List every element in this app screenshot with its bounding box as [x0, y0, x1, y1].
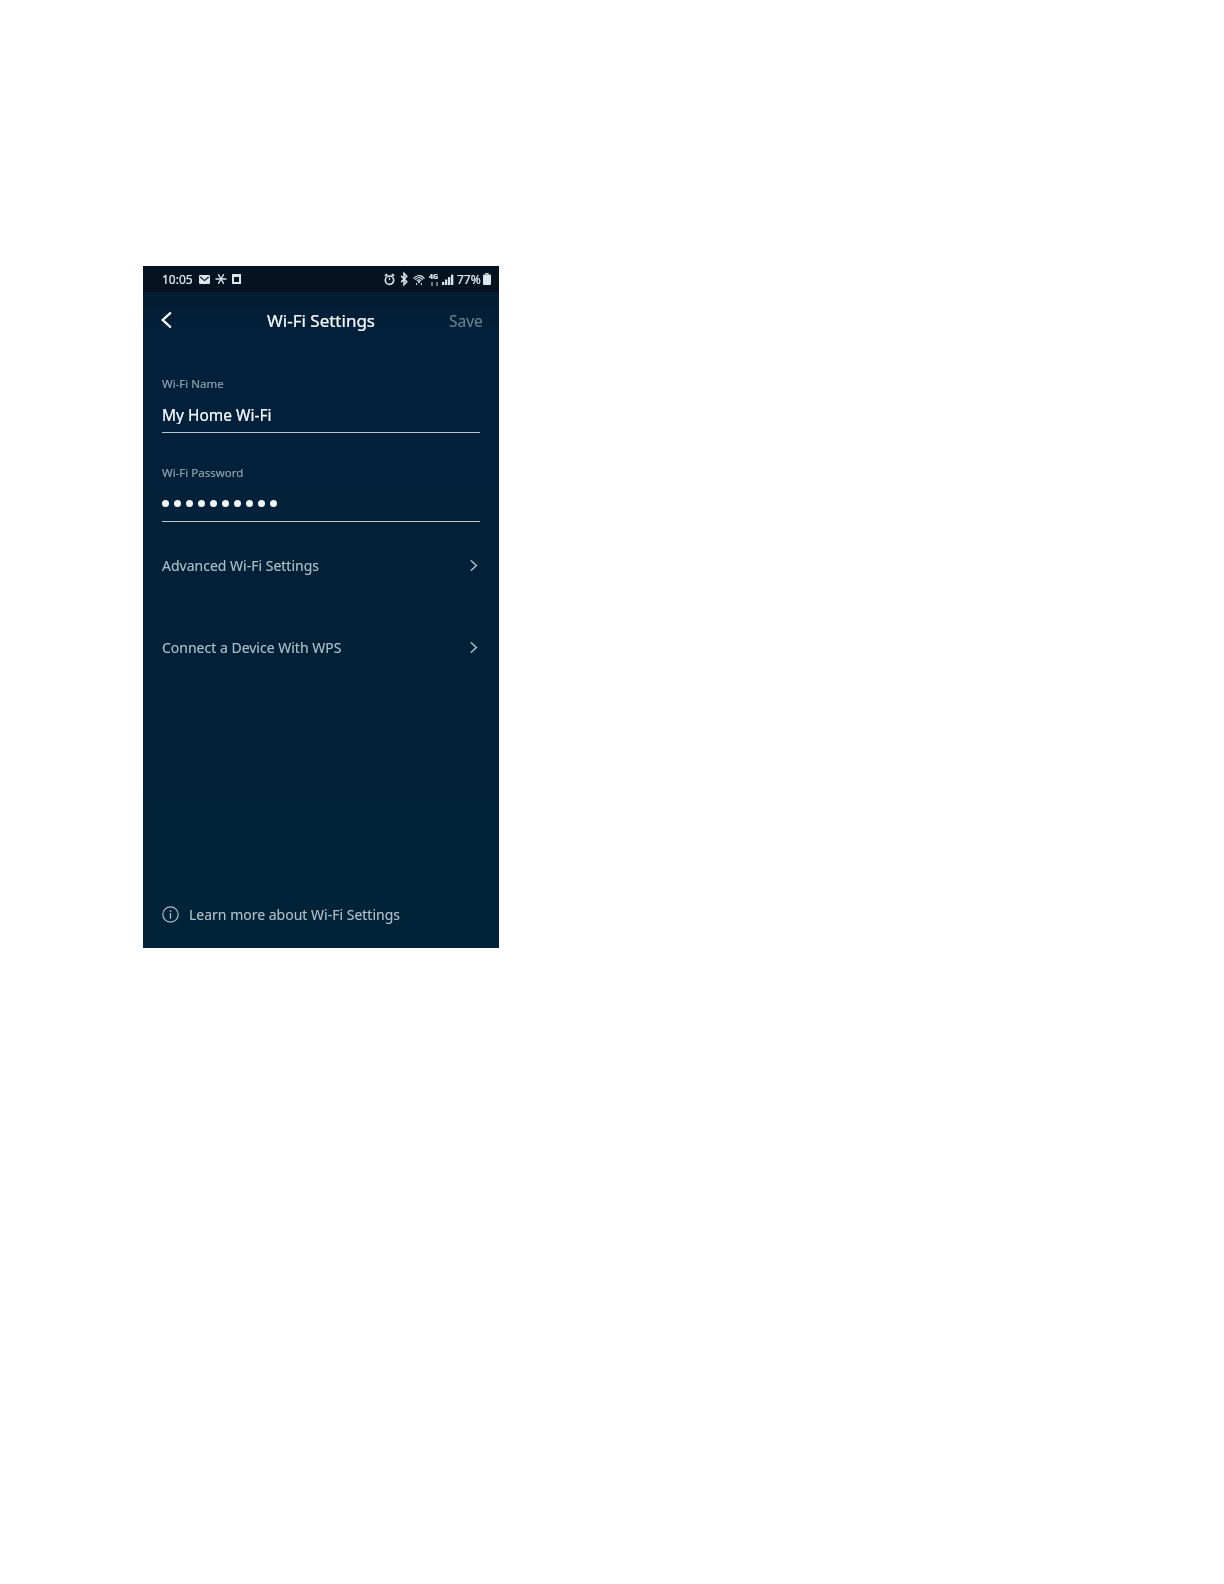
staticText: Wi-Fi Name	[162, 376, 224, 392]
button[interactable]: Wi-Fi Password	[162, 465, 480, 522]
staticText: Learn more about Wi-Fi Settings	[189, 905, 400, 924]
button[interactable]: Learn more about Wi-Fi Settings	[143, 894, 499, 934]
staticText: Save	[449, 310, 483, 331]
staticText: Connect a Device With WPS	[162, 638, 342, 657]
button[interactable]: Connect a Device With WPS	[143, 630, 499, 664]
staticText: 77%	[457, 271, 481, 287]
button[interactable]: Advanced Wi-Fi Settings	[143, 548, 499, 582]
staticText: Wi-Fi Settings	[267, 309, 375, 332]
staticText: My Home Wi-Fi	[162, 404, 272, 424]
staticText: Advanced Wi-Fi Settings	[162, 556, 319, 575]
button[interactable]: Wi-Fi Name	[162, 376, 480, 433]
staticText: 10:05	[162, 271, 193, 287]
button[interactable]: Back	[143, 296, 191, 344]
button[interactable]: Save	[433, 298, 499, 343]
staticText: 4G	[429, 272, 439, 282]
staticText: Wi-Fi Password	[162, 465, 244, 481]
